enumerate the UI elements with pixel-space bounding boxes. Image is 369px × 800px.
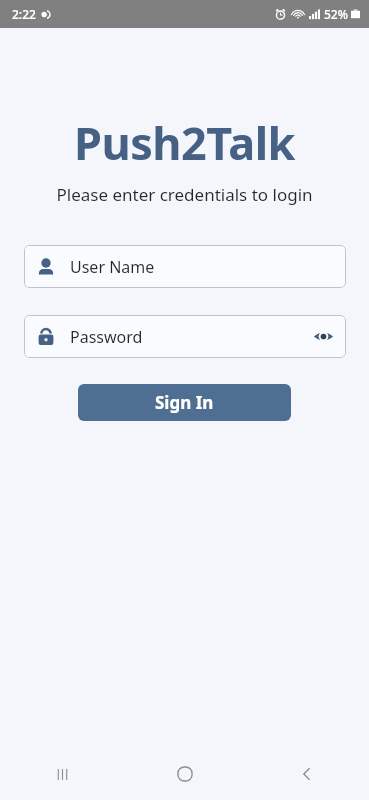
staticText: 52% bbox=[324, 6, 348, 22]
other: Password bbox=[36, 327, 56, 347]
staticText: Password bbox=[70, 326, 313, 348]
staticText: User Name bbox=[70, 256, 334, 278]
staticText: Push2Talk bbox=[0, 112, 369, 173]
button[interactable]: Recents bbox=[40, 752, 84, 796]
staticText: Please enter credentials to login bbox=[0, 183, 369, 206]
staticText: Sign In bbox=[155, 391, 214, 414]
button[interactable]: Back bbox=[285, 752, 329, 796]
button[interactable]: Show password bbox=[313, 326, 334, 347]
button[interactable]: Password bbox=[24, 315, 346, 358]
staticText: 2:22 bbox=[12, 6, 36, 22]
other: User bbox=[36, 257, 56, 277]
button[interactable]: Home bbox=[163, 752, 207, 796]
button[interactable]: User bbox=[24, 245, 346, 288]
button[interactable]: Sign In bbox=[78, 384, 291, 421]
